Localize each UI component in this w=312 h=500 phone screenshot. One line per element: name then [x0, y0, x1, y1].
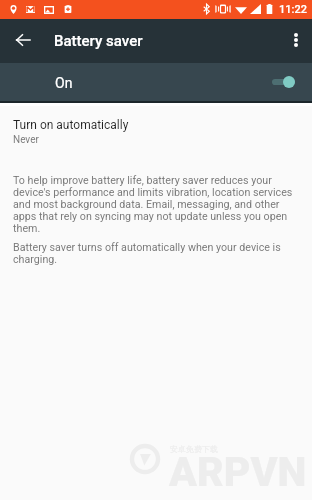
staticText: On	[55, 75, 73, 91]
staticText: Turn on automatically	[13, 118, 129, 132]
staticText: Battery saver	[54, 32, 143, 50]
button[interactable]: Navigate up	[5, 19, 41, 63]
button[interactable]: Turn on automatically	[0, 106, 312, 154]
button[interactable]: More options	[279, 19, 312, 63]
button[interactable]: On	[0, 63, 312, 103]
staticText: 安卓免费下载	[170, 444, 218, 454]
staticText: To help improve battery life, battery sa…	[13, 174, 294, 234]
staticText: Never	[13, 134, 39, 146]
staticText: 11:22	[279, 3, 307, 16]
staticText: Battery saver turns off automatically wh…	[13, 241, 294, 265]
staticText: ARPVN	[169, 448, 307, 496]
